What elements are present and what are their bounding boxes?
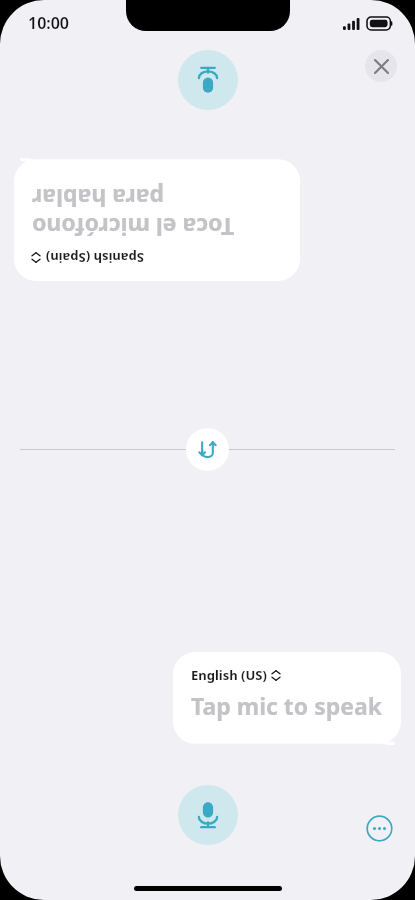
staticText: Toca el micrófono para hablar	[32, 182, 282, 243]
button[interactable]: Swap languages	[186, 428, 229, 471]
staticText: Tap mic to speak	[191, 690, 383, 721]
staticText: English (US)	[191, 666, 267, 684]
button[interactable]: English (US)	[173, 652, 401, 745]
button[interactable]: Spanish (Spain)	[14, 158, 300, 281]
button[interactable]: More options	[365, 814, 393, 842]
staticText: 10:00	[28, 12, 70, 34]
staticText: Spanish (Spain)	[45, 249, 144, 267]
button[interactable]: Spanish microphone	[178, 50, 238, 110]
button[interactable]: English microphone	[178, 785, 238, 845]
button[interactable]: Close	[365, 50, 397, 82]
